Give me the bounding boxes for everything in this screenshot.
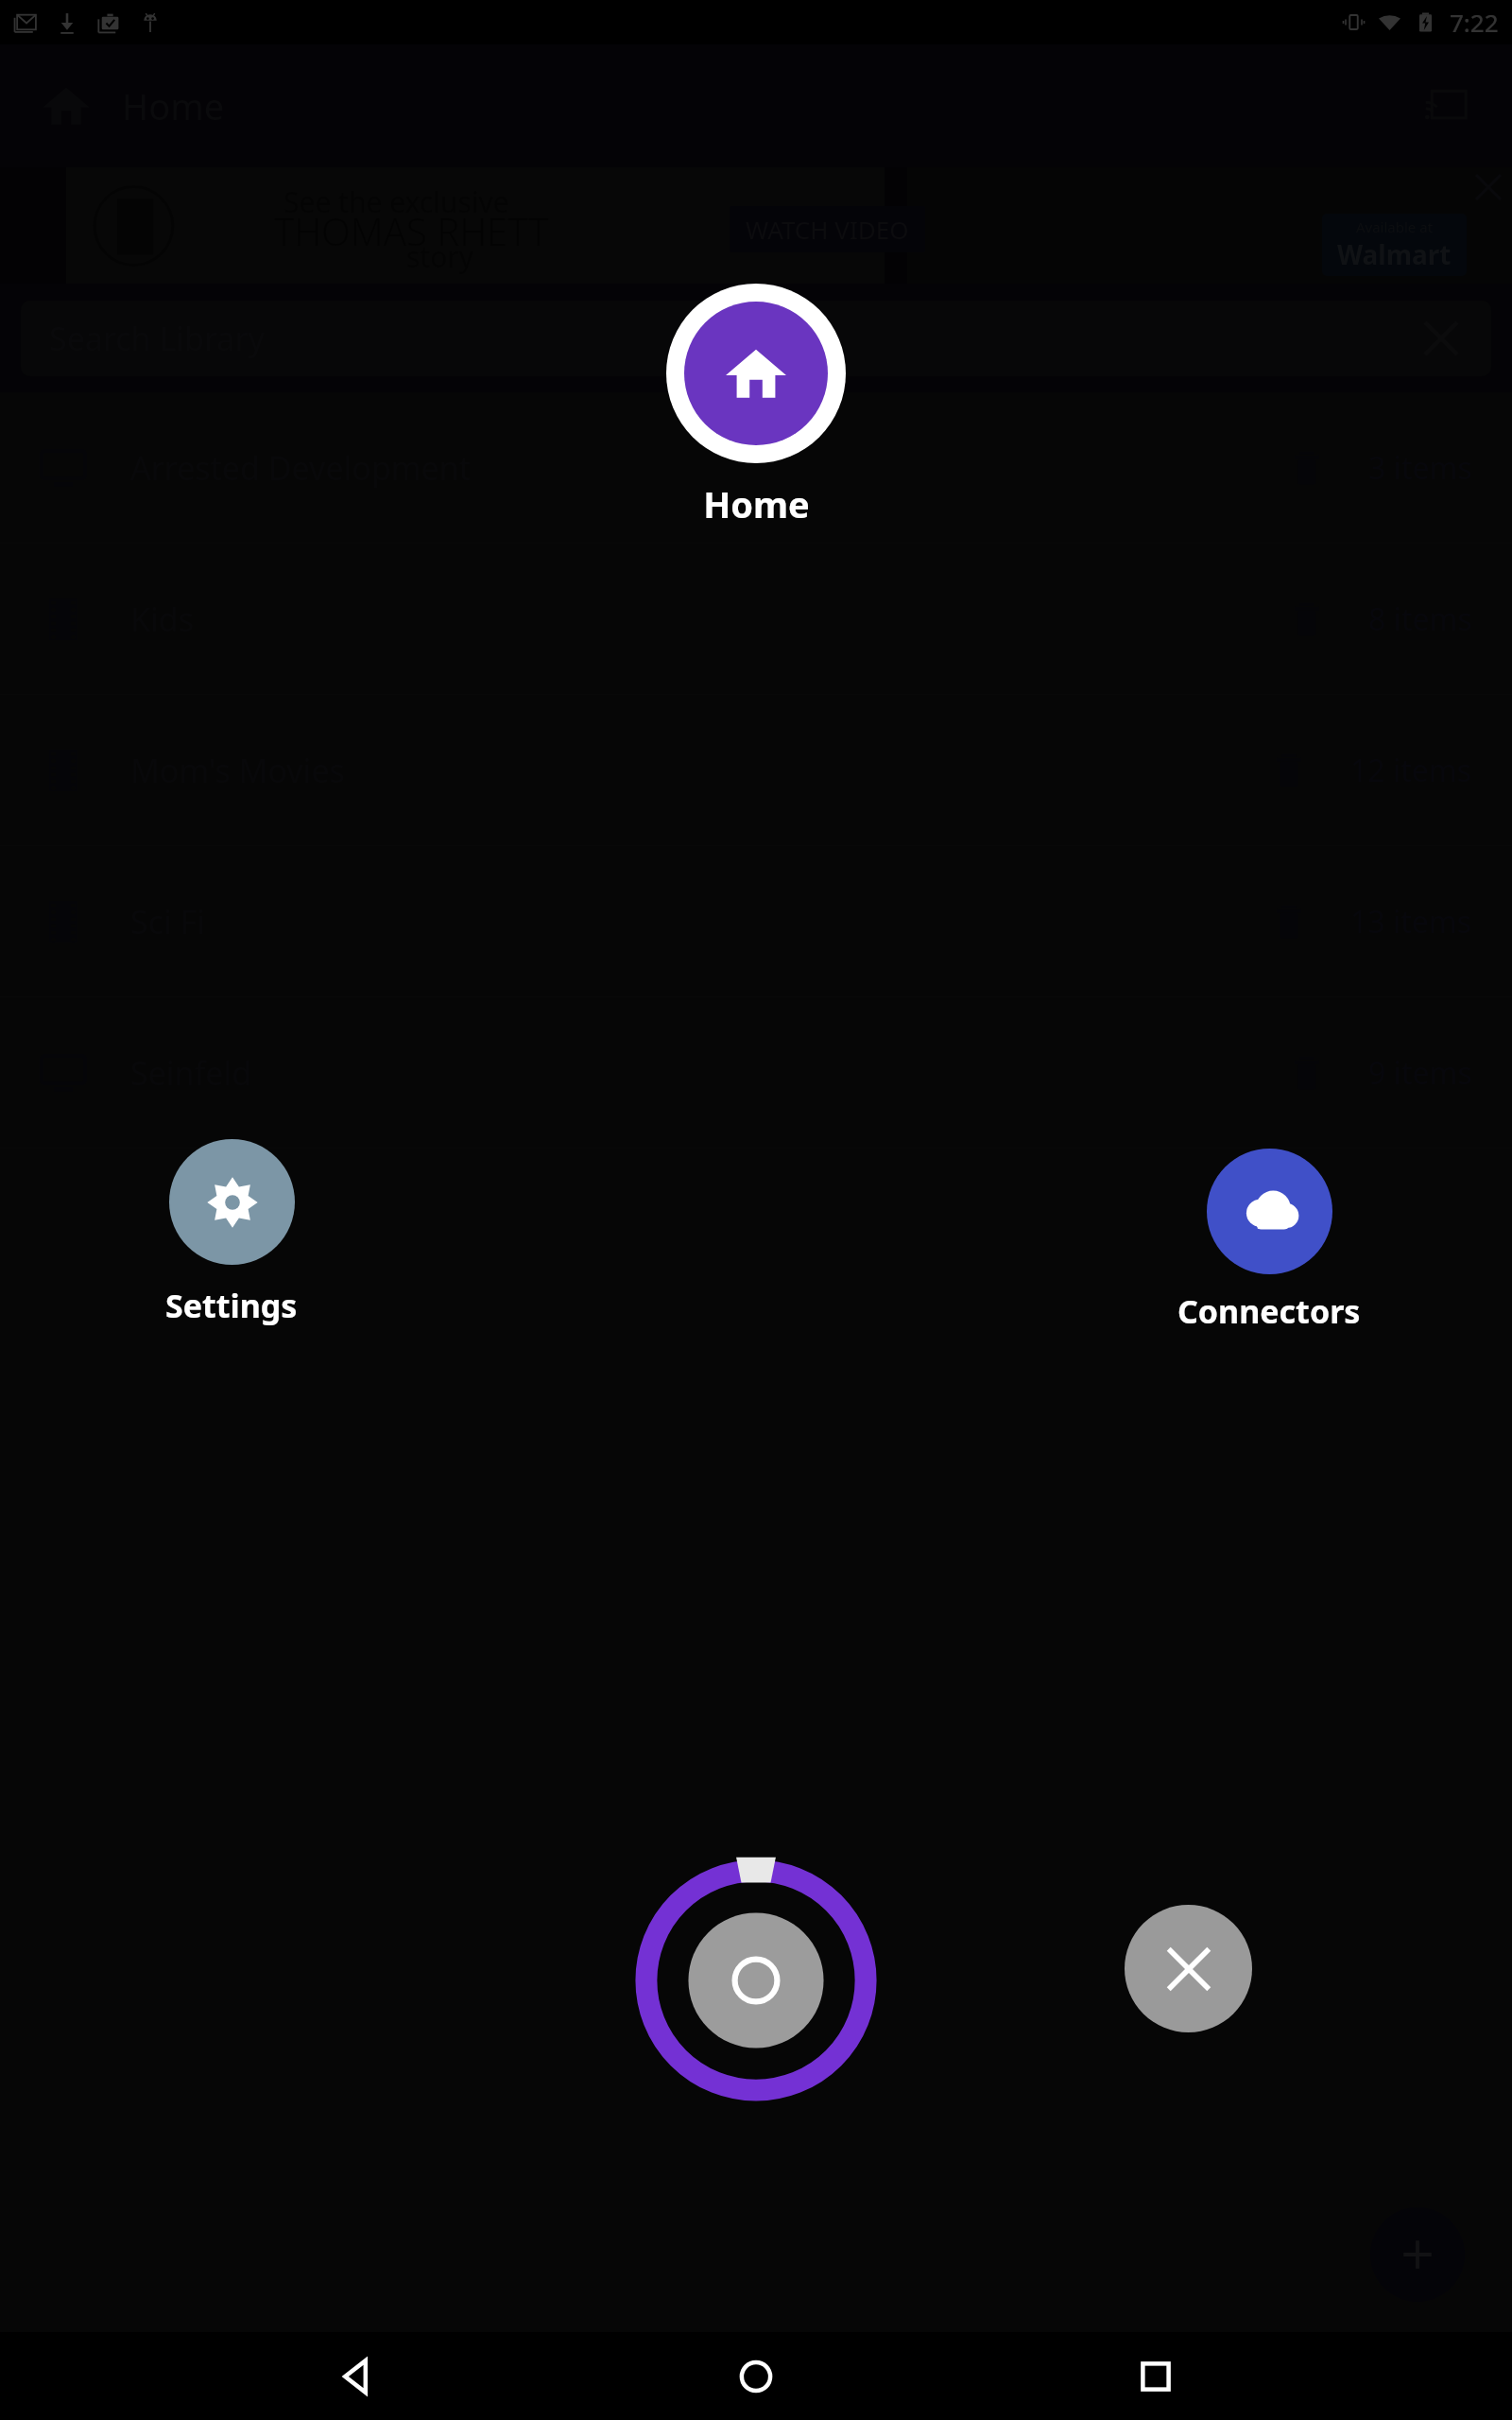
- button[interactable]: Radial menu hub: [628, 1853, 884, 2108]
- button[interactable]: Connectors: [1177, 1149, 1361, 1333]
- staticText: Home: [703, 479, 810, 528]
- button[interactable]: Seinfeld: [0, 997, 1512, 1149]
- staticText: Walmart: [1337, 236, 1452, 272]
- button[interactable]: Search Library: [21, 301, 1491, 376]
- button[interactable]: Back: [315, 2334, 400, 2419]
- button[interactable]: Home: [713, 2334, 799, 2419]
- button[interactable]: Arrested Development: [0, 392, 1512, 544]
- staticText: Settings: [165, 1284, 298, 1327]
- button[interactable]: Settings: [165, 1139, 298, 1327]
- button[interactable]: Close: [1125, 1905, 1252, 2032]
- staticText: Connectors: [1177, 1289, 1361, 1333]
- staticText: 7:22: [1450, 6, 1499, 39]
- button[interactable]: Recent apps: [1113, 2334, 1198, 2419]
- button[interactable]: Home: [666, 284, 846, 528]
